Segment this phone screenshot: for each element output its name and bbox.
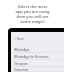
staticText: Select the most app you are using then y… [15, 4, 50, 24]
staticText: WhatsApp [14, 48, 30, 52]
button[interactable]: Telegram [11, 60, 64, 67]
staticText: WhatsApp for Business [14, 55, 49, 59]
button[interactable]: WhatsApp for Business [11, 53, 64, 60]
staticText: < Back [14, 37, 24, 41]
button[interactable]: Snapchat [11, 67, 64, 72]
staticText: Snapchat [14, 68, 28, 72]
button[interactable]: < Back [14, 37, 64, 41]
staticText: Telegram [14, 62, 28, 66]
button[interactable]: WhatsApp [11, 46, 64, 53]
